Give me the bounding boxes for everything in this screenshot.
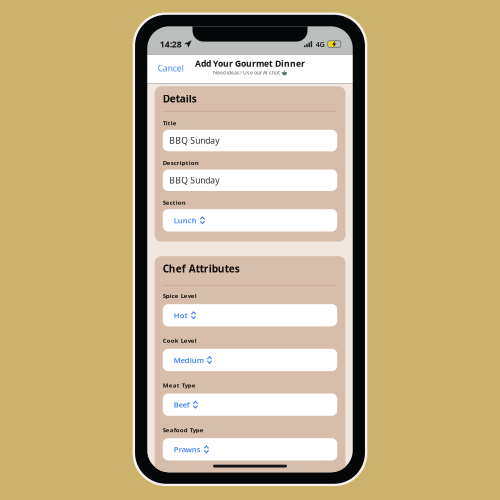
staticText: BBQ Sunday: [169, 174, 219, 186]
button[interactable]: Cancel: [155, 59, 187, 77]
staticText: Hot: [174, 310, 188, 320]
staticText: Seafood Type: [163, 426, 204, 434]
staticText: Meat Type: [163, 381, 196, 389]
staticText: Details: [163, 92, 197, 105]
staticText: Chef Attributes: [163, 262, 240, 275]
staticText: Section: [163, 198, 186, 206]
staticText: Cook Level: [163, 336, 197, 344]
staticText: Add Your Gourmet Dinner: [195, 58, 305, 69]
button[interactable]: Prawns: [163, 438, 337, 460]
staticText: BBQ Sunday: [169, 135, 219, 146]
staticText: Beef: [174, 399, 190, 410]
button[interactable]: Medium: [163, 349, 337, 371]
staticText: Cancel: [158, 62, 184, 74]
staticText: Need ideas? Use our AI chat: [213, 69, 280, 76]
staticText: 4G: [316, 39, 325, 49]
staticText: Lunch: [174, 215, 197, 226]
button[interactable]: Beef: [163, 393, 337, 416]
staticText: Title: [163, 119, 177, 127]
button[interactable]: Lunch: [163, 209, 337, 231]
button[interactable]: Hot: [163, 304, 337, 326]
staticText: Spice Level: [163, 292, 197, 300]
staticText: Medium: [174, 355, 204, 365]
staticText: Description: [163, 159, 199, 167]
staticText: 14:28: [160, 38, 182, 50]
staticText: Prawns: [174, 444, 201, 455]
